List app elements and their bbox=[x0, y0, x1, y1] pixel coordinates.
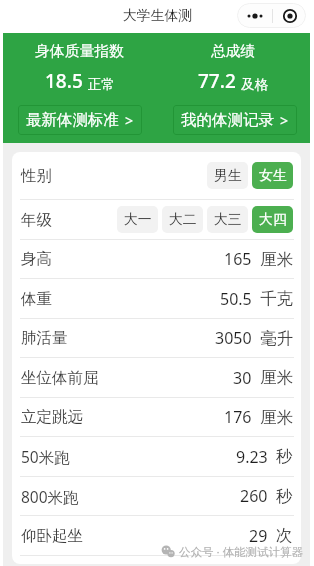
button[interactable]: 身体质量指数 bbox=[3, 42, 156, 94]
button[interactable]: 大四 bbox=[252, 206, 293, 233]
staticText: > bbox=[280, 111, 289, 130]
staticText: 正常 bbox=[88, 76, 115, 93]
staticText: 秒 bbox=[276, 446, 293, 467]
staticText: 165 bbox=[224, 248, 252, 270]
button[interactable]: 立定跳远 bbox=[21, 398, 293, 436]
staticText: 体重 bbox=[21, 289, 52, 309]
staticText: 厘米 bbox=[260, 249, 293, 270]
staticText: 公众号 · 体能测试计算器 bbox=[179, 544, 304, 560]
button[interactable]: Close mini program bbox=[273, 3, 306, 28]
staticText: 毫升 bbox=[260, 328, 293, 349]
staticText: 性别 bbox=[21, 166, 52, 186]
button[interactable]: 我的体测记录 bbox=[173, 105, 297, 135]
staticText: 大学生体测 bbox=[123, 7, 192, 24]
staticText: 77.2 bbox=[198, 68, 236, 94]
staticText: 秒 bbox=[276, 486, 293, 507]
button[interactable]: 最新体测标准 bbox=[18, 105, 142, 135]
button[interactable]: 总成绩 bbox=[156, 42, 310, 94]
staticText: > bbox=[125, 111, 134, 130]
staticText: 最新体测标准 bbox=[26, 110, 119, 130]
staticText: 176 bbox=[224, 406, 252, 428]
staticText: 身高 bbox=[21, 249, 52, 269]
button[interactable]: 坐位体前屈 bbox=[21, 358, 293, 397]
button[interactable]: 体重 bbox=[21, 279, 293, 318]
staticText: 厘米 bbox=[260, 407, 293, 428]
staticText: 年级 bbox=[21, 210, 52, 230]
button[interactable]: 女生 bbox=[252, 162, 293, 189]
staticText: 50.5 bbox=[220, 288, 252, 310]
staticText: 次 bbox=[276, 525, 293, 546]
button[interactable]: More bbox=[237, 3, 272, 28]
staticText: 大四 bbox=[259, 211, 287, 228]
staticText: 我的体测记录 bbox=[181, 110, 274, 130]
staticText: 30 bbox=[233, 367, 252, 389]
button[interactable]: 50米跑 bbox=[21, 437, 293, 476]
staticText: 3050 bbox=[215, 327, 252, 349]
staticText: 9.23 bbox=[236, 446, 268, 468]
staticText: 29 bbox=[249, 525, 268, 547]
button[interactable]: 大一 bbox=[117, 206, 158, 233]
staticText: 50米跑 bbox=[21, 446, 70, 467]
staticText: 大三 bbox=[214, 211, 242, 228]
staticText: 仰卧起坐 bbox=[21, 526, 83, 546]
staticText: 260 bbox=[240, 485, 268, 507]
staticText: 厘米 bbox=[260, 367, 293, 388]
staticText: 坐位体前屈 bbox=[21, 368, 99, 388]
staticText: 大二 bbox=[169, 211, 197, 228]
staticText: 立定跳远 bbox=[21, 407, 83, 427]
staticText: 18.5 bbox=[45, 68, 83, 94]
staticText: 及格 bbox=[241, 76, 268, 93]
button[interactable]: 大二 bbox=[162, 206, 203, 233]
button[interactable]: 仰卧起坐 bbox=[21, 516, 293, 555]
button[interactable]: 大三 bbox=[207, 206, 248, 233]
staticText: 女生 bbox=[259, 167, 287, 184]
staticText: 男生 bbox=[214, 167, 242, 184]
button[interactable]: 身高 bbox=[21, 240, 293, 278]
staticText: 大一 bbox=[124, 211, 152, 228]
staticText: 800米跑 bbox=[21, 486, 79, 507]
staticText: 总成绩 bbox=[211, 42, 256, 61]
staticText: 肺活量 bbox=[21, 328, 68, 348]
staticText: 身体质量指数 bbox=[35, 42, 124, 61]
button[interactable]: 男生 bbox=[207, 162, 248, 189]
button[interactable]: 肺活量 bbox=[21, 319, 293, 357]
staticText: 千克 bbox=[260, 288, 293, 309]
button[interactable]: 800米跑 bbox=[21, 477, 293, 515]
